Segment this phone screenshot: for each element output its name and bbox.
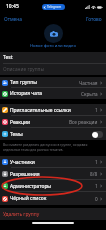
staticText: Telegram [47, 5, 62, 9]
staticText: Отмена [4, 16, 22, 21]
staticText: 1 [95, 183, 98, 189]
staticText: 0 [95, 196, 98, 202]
button[interactable]: Реакции [0, 116, 106, 128]
staticText: Тип группы [10, 79, 37, 86]
staticText: Скрыта [81, 91, 98, 97]
button[interactable]: Тип группы [0, 77, 106, 88]
staticText: Test [3, 54, 13, 61]
button[interactable]: Чёрный список [0, 192, 106, 205]
staticText: Темы [10, 131, 23, 138]
button[interactable]: Set new group photo or video [44, 24, 63, 43]
staticText: 10:45 [6, 3, 19, 10]
staticText: Вы сможете разделять дискуссии в группе,… [3, 142, 104, 152]
staticText: Все реакции [69, 119, 98, 125]
staticText: 8/8 [90, 171, 98, 177]
staticText: История чата [10, 90, 42, 97]
staticText: Реакции [10, 119, 30, 126]
button[interactable]: Удалить группу [0, 208, 106, 220]
button[interactable]: Разрешения [0, 168, 106, 180]
staticText: Участники [10, 159, 35, 166]
staticText: 1 [95, 159, 98, 165]
staticText: Частная [79, 80, 98, 86]
button[interactable]: Участники [0, 156, 106, 168]
staticText: Новое фото или видео [30, 43, 76, 49]
button[interactable]: Готово [82, 13, 106, 24]
button[interactable]: Темы [0, 128, 106, 140]
button[interactable]: Test [0, 52, 106, 63]
button[interactable]: Администраторы [0, 180, 106, 192]
button[interactable]: Описание группы [0, 64, 106, 75]
staticText: Администраторы [10, 183, 52, 190]
button[interactable]: Отмена [0, 13, 26, 24]
button[interactable]: История чата [0, 88, 106, 99]
staticText: Удалить группу [3, 211, 40, 218]
staticText: Пригласительные ссылки [10, 107, 71, 114]
staticText: Готово [86, 16, 102, 21]
button[interactable]: Пригласительные ссылки [0, 104, 106, 116]
staticText: Описание группы [3, 66, 45, 73]
staticText: 1 [95, 107, 98, 113]
staticText: Чёрный список [10, 195, 47, 202]
staticText: Разрешения [10, 171, 40, 178]
